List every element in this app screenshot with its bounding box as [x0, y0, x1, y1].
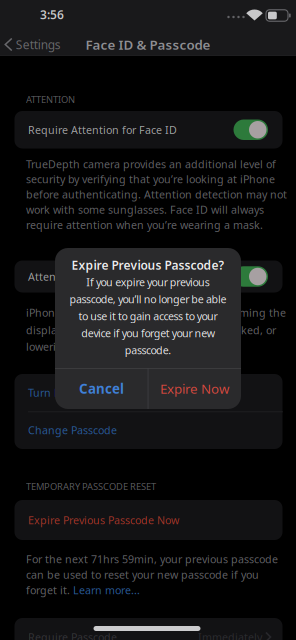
- staticText: iPhone will check for attention before d…: [26, 305, 286, 320]
- staticText: TrueDepth camera provides an additional …: [26, 157, 276, 171]
- staticText: device if you forget your new: [81, 326, 215, 340]
- button[interactable]: Expire Now: [148, 368, 240, 409]
- staticText: forget it.: [26, 583, 73, 597]
- staticText: Expire Previous Passcode?: [71, 257, 224, 273]
- staticText: passcode, you’ll no longer be able: [69, 292, 226, 306]
- staticText: Cancel: [79, 380, 124, 397]
- button[interactable]: Require Passcode: [14, 618, 282, 640]
- button[interactable]: Learn more...: [73, 583, 140, 597]
- button[interactable]: Change Passcode: [28, 423, 268, 437]
- button[interactable]: Settings: [5, 36, 61, 52]
- staticText: work with some sunglasses. Face ID will …: [26, 202, 264, 217]
- staticText: Settings: [16, 36, 61, 52]
- staticText: display, expanding a notification when l…: [26, 323, 276, 337]
- staticText: security by verifying that you’re lookin…: [26, 172, 275, 186]
- staticText: Immediately: [198, 630, 262, 640]
- staticText: Expire Previous Passcode Now: [28, 513, 179, 527]
- staticText: Expire Now: [160, 380, 229, 397]
- staticText: If you expire your previous: [86, 275, 210, 289]
- button[interactable]: Require Attention for Face ID: [14, 111, 282, 148]
- staticText: lowering the volume of some alerts.: [26, 339, 207, 354]
- button[interactable]: Turn Passcode Off: [28, 386, 268, 400]
- staticText: Attention Aware Features: [28, 269, 157, 284]
- staticText: Require Attention for Face ID: [28, 123, 177, 137]
- staticText: passcode.: [125, 343, 171, 357]
- staticText: Change Passcode: [28, 423, 117, 437]
- staticText: Require Passcode: [28, 630, 117, 640]
- staticText: Turn Passcode Off: [28, 386, 118, 400]
- staticText: to use it to gain access to your: [78, 309, 217, 323]
- staticText: TEMPORARY PASSCODE RESET: [26, 480, 156, 493]
- button[interactable]: Attention Aware Features: [14, 260, 282, 292]
- staticText: Learn more...: [73, 583, 140, 597]
- staticText: ATTENTION: [26, 93, 75, 106]
- staticText: 3:56: [40, 6, 64, 22]
- staticText: Face ID & Passcode: [85, 36, 210, 53]
- staticText: For the next 71hrs 59min, your previous …: [26, 552, 278, 566]
- staticText: require attention when you’re wearing a …: [26, 218, 263, 232]
- staticText: can be used to reset your new passcode i…: [26, 567, 259, 582]
- button[interactable]: Expire Previous Passcode Now: [14, 500, 282, 540]
- staticText: before authenticating. Attention detecti…: [26, 187, 287, 201]
- button[interactable]: Cancel: [55, 368, 147, 409]
